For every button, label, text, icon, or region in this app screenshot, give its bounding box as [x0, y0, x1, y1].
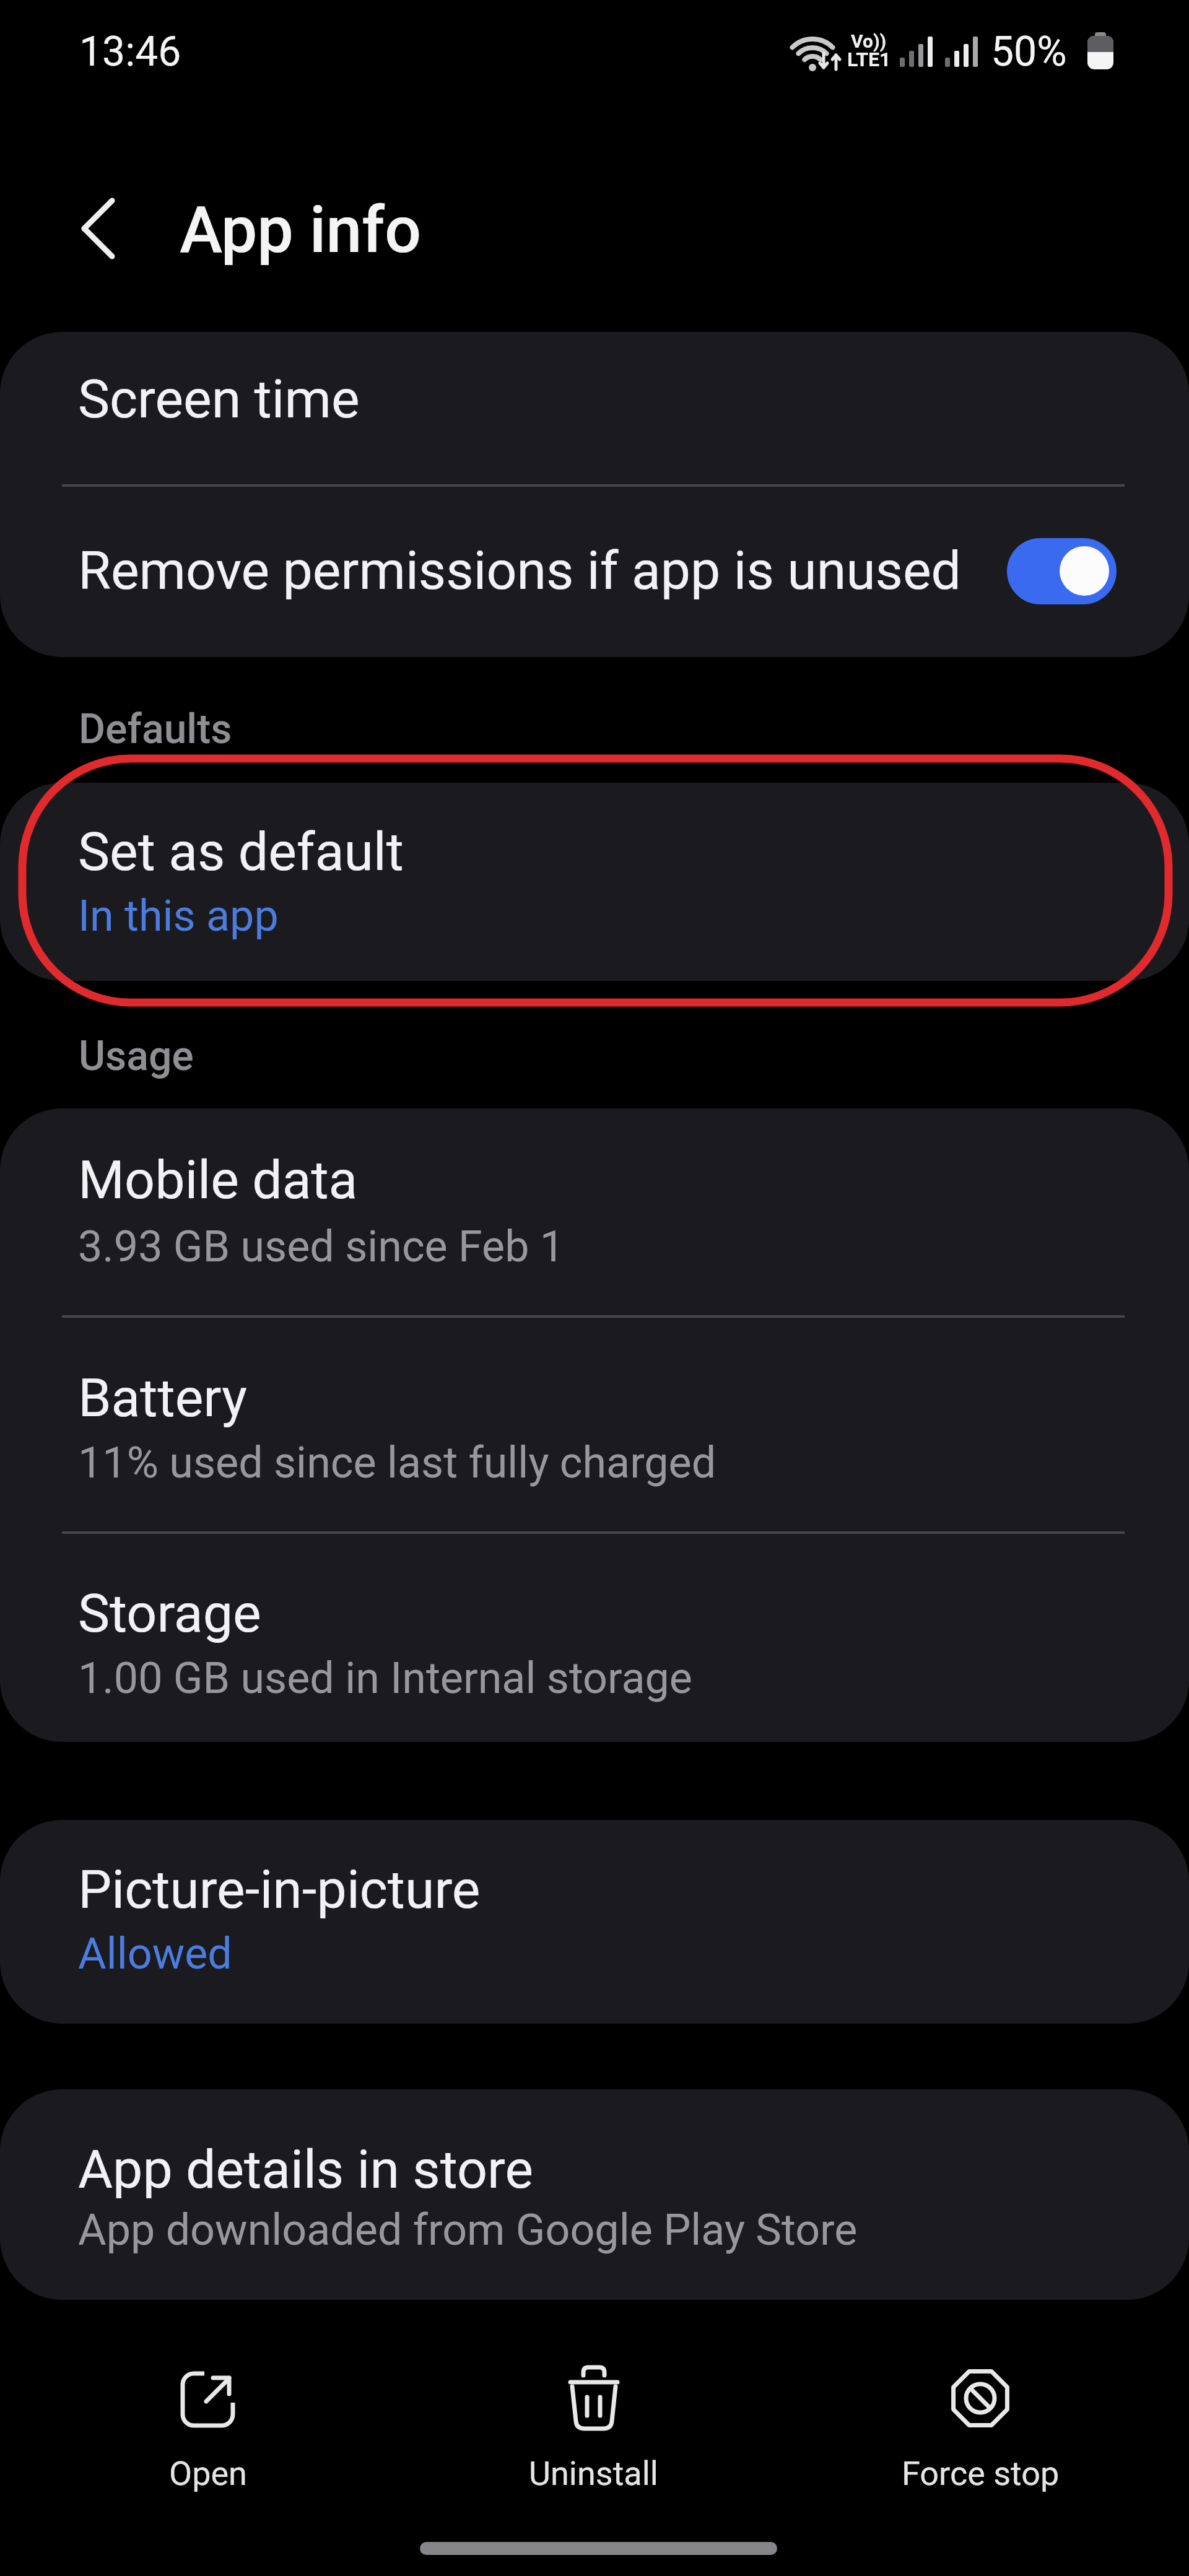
staticText: 3.93 GB used since Feb 1 [78, 1221, 565, 1272]
button[interactable] [50, 186, 142, 272]
staticText: In this app [78, 890, 279, 941]
button[interactable] [0, 1320, 1189, 1531]
button[interactable] [0, 1820, 1189, 2024]
button[interactable] [0, 485, 1189, 657]
staticText: Battery [78, 1367, 247, 1429]
staticText: 50% [991, 28, 1067, 76]
staticText: Defaults [79, 705, 232, 753]
staticText: Force stop [902, 2454, 1060, 2493]
button[interactable] [0, 2089, 1189, 2300]
staticText: Usage [79, 1032, 194, 1080]
staticText: App downloaded from Google Play Store [78, 2204, 858, 2255]
button[interactable] [1007, 538, 1117, 604]
staticText: Remove permissions if app is unused [78, 539, 962, 602]
staticText: 13:46 [79, 28, 181, 76]
button[interactable] [519, 2353, 668, 2502]
staticText: LTE1 [847, 48, 891, 71]
staticText: Vo)) [851, 30, 887, 52]
staticText: App info [180, 193, 422, 268]
button[interactable] [0, 783, 1189, 981]
staticText: Uninstall [529, 2454, 658, 2493]
button[interactable] [0, 1108, 1189, 1320]
staticText: 11% used since last fully charged [78, 1437, 716, 1488]
staticText: App details in store [78, 2138, 533, 2201]
staticText: Picture-in-picture [78, 1858, 481, 1921]
button[interactable] [0, 332, 1189, 485]
staticText: Mobile data [78, 1149, 358, 1211]
staticText: Open [169, 2454, 247, 2493]
staticText: Set as default [78, 820, 404, 883]
button[interactable] [0, 1531, 1189, 1742]
button[interactable] [906, 2353, 1055, 2502]
button[interactable] [134, 2353, 282, 2502]
staticText: Screen time [78, 368, 360, 430]
staticText: 1.00 GB used in Internal storage [78, 1653, 692, 1704]
staticText: Allowed [78, 1928, 232, 1979]
staticText: Storage [78, 1582, 261, 1645]
